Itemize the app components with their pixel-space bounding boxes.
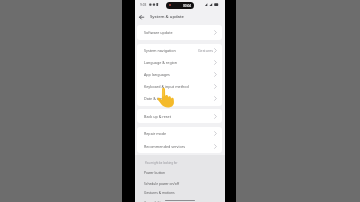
staticText: Language & region [144,60,214,65]
staticText: App languages [144,72,214,77]
staticText: Back up & reset [144,114,214,119]
button[interactable]: Software update [137,25,222,40]
staticText: You might be looking for [145,161,178,165]
staticText: System & update [150,14,185,20]
staticText: Accessibility [144,200,163,202]
staticText: Keyboard & input method [144,84,214,89]
button[interactable]: Power button [135,167,225,177]
button[interactable]: Schedule power on/off [135,178,225,188]
button[interactable]: System navigation [137,44,222,56]
staticText: Gestures [198,48,214,53]
button[interactable]: Date & time [137,92,222,104]
staticText: Repair mode [144,131,214,136]
staticText: Software update [144,30,214,35]
staticText: Power button [144,170,166,174]
staticText: Date & time [144,96,214,101]
button[interactable]: Repair mode [137,127,222,140]
button[interactable]: Language & region [137,56,222,68]
button[interactable]: Back up & reset [137,109,222,123]
staticText: Schedule power on/off [144,181,180,185]
staticText: 9:03 [140,3,147,7]
button[interactable]: Keyboard & input method [137,80,222,92]
button[interactable]: Accessibility [135,197,225,202]
button[interactable]: Gestures & motions [135,187,225,197]
staticText: 00:04 [183,4,192,8]
button[interactable]: Recommended services [137,140,222,153]
button[interactable]: App languages [137,68,222,80]
button[interactable]: Back [137,12,147,22]
staticText: Gestures & motions [144,190,175,194]
staticText: Recommended services [144,144,214,149]
staticText: System navigation [144,48,198,53]
